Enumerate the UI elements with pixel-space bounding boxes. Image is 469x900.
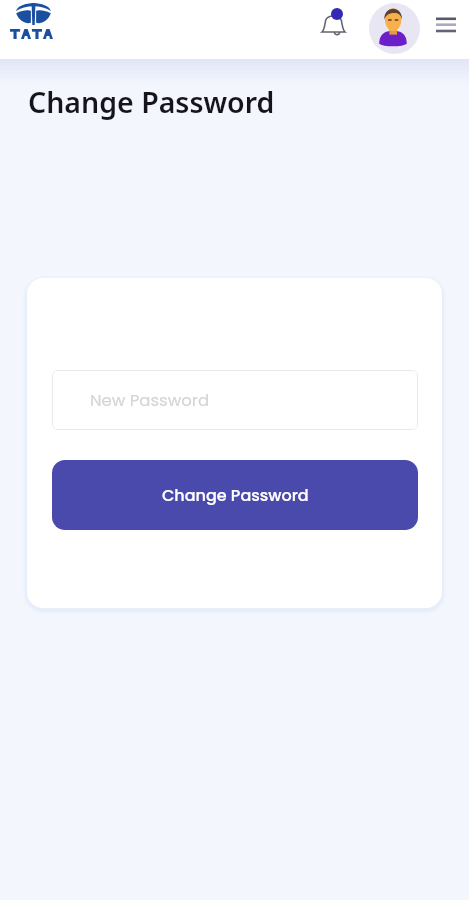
staticText: Change Password: [162, 484, 309, 506]
button[interactable]: Menu: [430, 12, 462, 38]
staticText: New Password: [90, 389, 210, 412]
button[interactable]: Profile: [369, 3, 420, 54]
button[interactable]: Notifications: [316, 6, 352, 42]
button[interactable]: New Password: [52, 370, 418, 430]
button[interactable]: Tata: [4, 0, 60, 48]
staticText: Change Password: [28, 83, 275, 122]
button[interactable]: Change Password: [52, 460, 418, 530]
